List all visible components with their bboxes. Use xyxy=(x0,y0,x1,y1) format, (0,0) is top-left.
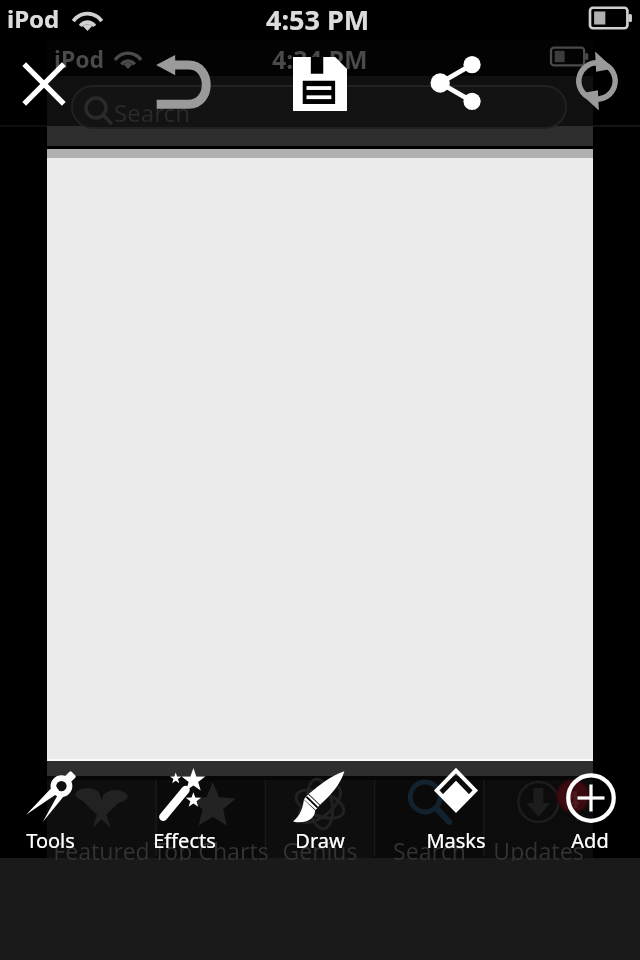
button[interactable]: Add xyxy=(566,773,616,823)
staticText: Top Charts xyxy=(153,835,269,861)
staticText: Search xyxy=(393,835,466,861)
staticText: iPod xyxy=(54,43,105,74)
button[interactable]: Tools xyxy=(24,770,76,824)
button[interactable]: Tools xyxy=(0,827,112,853)
staticText: Genius xyxy=(282,835,358,861)
button[interactable]: Undo xyxy=(155,55,211,111)
staticText: Add xyxy=(571,827,609,853)
button[interactable]: Close xyxy=(21,61,67,107)
button[interactable]: Masks xyxy=(428,768,484,824)
staticText: 4 xyxy=(566,782,580,810)
button[interactable]: Save xyxy=(293,57,347,111)
staticText: Search xyxy=(114,96,190,129)
staticText: 4:53 PM xyxy=(266,1,370,38)
button[interactable]: Share xyxy=(431,56,485,110)
staticText: Effects xyxy=(153,827,216,853)
staticText: Updates xyxy=(493,835,584,861)
staticText: Masks xyxy=(426,827,486,853)
button[interactable]: Draw xyxy=(258,827,382,853)
button[interactable]: Redo xyxy=(571,54,623,108)
staticText: 4:34 PM xyxy=(272,42,368,76)
button[interactable]: Masks xyxy=(394,827,518,853)
staticText: Tools xyxy=(26,827,75,853)
staticText: Draw xyxy=(295,827,345,853)
button[interactable]: Add xyxy=(528,827,640,853)
button[interactable]: Effects xyxy=(122,827,246,853)
staticText: Featured xyxy=(53,835,150,861)
button[interactable]: Effects xyxy=(157,769,209,823)
button[interactable]: Draw xyxy=(292,769,346,823)
staticText: iPod xyxy=(7,2,60,35)
